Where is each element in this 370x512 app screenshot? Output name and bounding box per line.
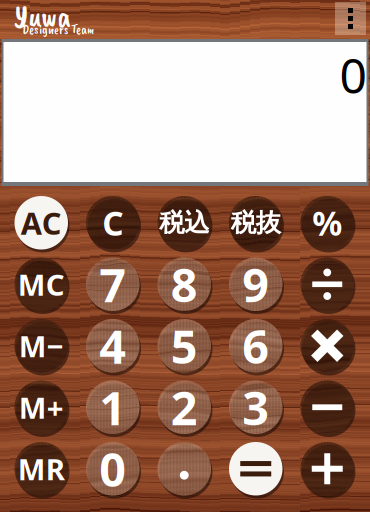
button[interactable]: Decimal point xyxy=(157,442,211,495)
button[interactable]: MR xyxy=(14,442,68,495)
button[interactable]: 2 xyxy=(157,380,211,434)
staticText: MR xyxy=(18,449,65,488)
button[interactable]: 7 xyxy=(86,257,139,311)
staticText: Designers Team xyxy=(22,21,94,38)
button[interactable]: 6 xyxy=(229,319,282,372)
staticText: M− xyxy=(19,326,64,365)
button[interactable]: 9 xyxy=(229,257,282,311)
button[interactable]: 5 xyxy=(157,319,211,372)
staticText: 6 xyxy=(242,315,269,377)
button[interactable]: Equals xyxy=(229,442,282,495)
button[interactable]: 税込 xyxy=(157,196,211,249)
staticText: 8 xyxy=(171,253,198,315)
button[interactable]: Multiply xyxy=(300,319,354,372)
staticText: 税抜 xyxy=(231,207,281,238)
staticText: % xyxy=(312,201,342,245)
staticText: M+ xyxy=(19,388,64,427)
button[interactable]: 税抜 xyxy=(229,196,282,249)
button[interactable]: 1 xyxy=(86,380,139,434)
staticText: 7 xyxy=(99,253,126,315)
button[interactable]: % xyxy=(300,196,354,249)
button[interactable]: M− xyxy=(14,319,68,372)
staticText: C xyxy=(102,201,123,245)
button[interactable]: M+ xyxy=(14,380,68,434)
button[interactable]: C xyxy=(86,196,139,249)
staticText: 0 xyxy=(339,43,366,107)
button[interactable]: AC xyxy=(14,196,68,249)
button[interactable]: 0 xyxy=(86,442,139,495)
button[interactable]: Divide xyxy=(300,257,354,311)
staticText: MC xyxy=(18,265,65,304)
button[interactable]: MC xyxy=(14,257,68,311)
staticText: 4 xyxy=(99,315,126,377)
staticText: 3 xyxy=(242,376,269,438)
staticText: AC xyxy=(21,202,62,243)
button[interactable]: 3 xyxy=(229,380,282,434)
button[interactable]: 4 xyxy=(86,319,139,372)
button[interactable]: Minus xyxy=(300,380,354,434)
staticText: 9 xyxy=(242,253,269,315)
staticText: 2 xyxy=(171,376,198,438)
staticText: 税込 xyxy=(159,207,209,238)
staticText: 0 xyxy=(99,438,126,500)
staticText: 5 xyxy=(171,315,198,377)
button[interactable]: More options xyxy=(335,2,366,35)
staticText: Yuwa xyxy=(14,0,71,36)
button[interactable]: 8 xyxy=(157,257,211,311)
staticText: 1 xyxy=(99,376,126,438)
button[interactable]: Plus xyxy=(300,442,354,495)
